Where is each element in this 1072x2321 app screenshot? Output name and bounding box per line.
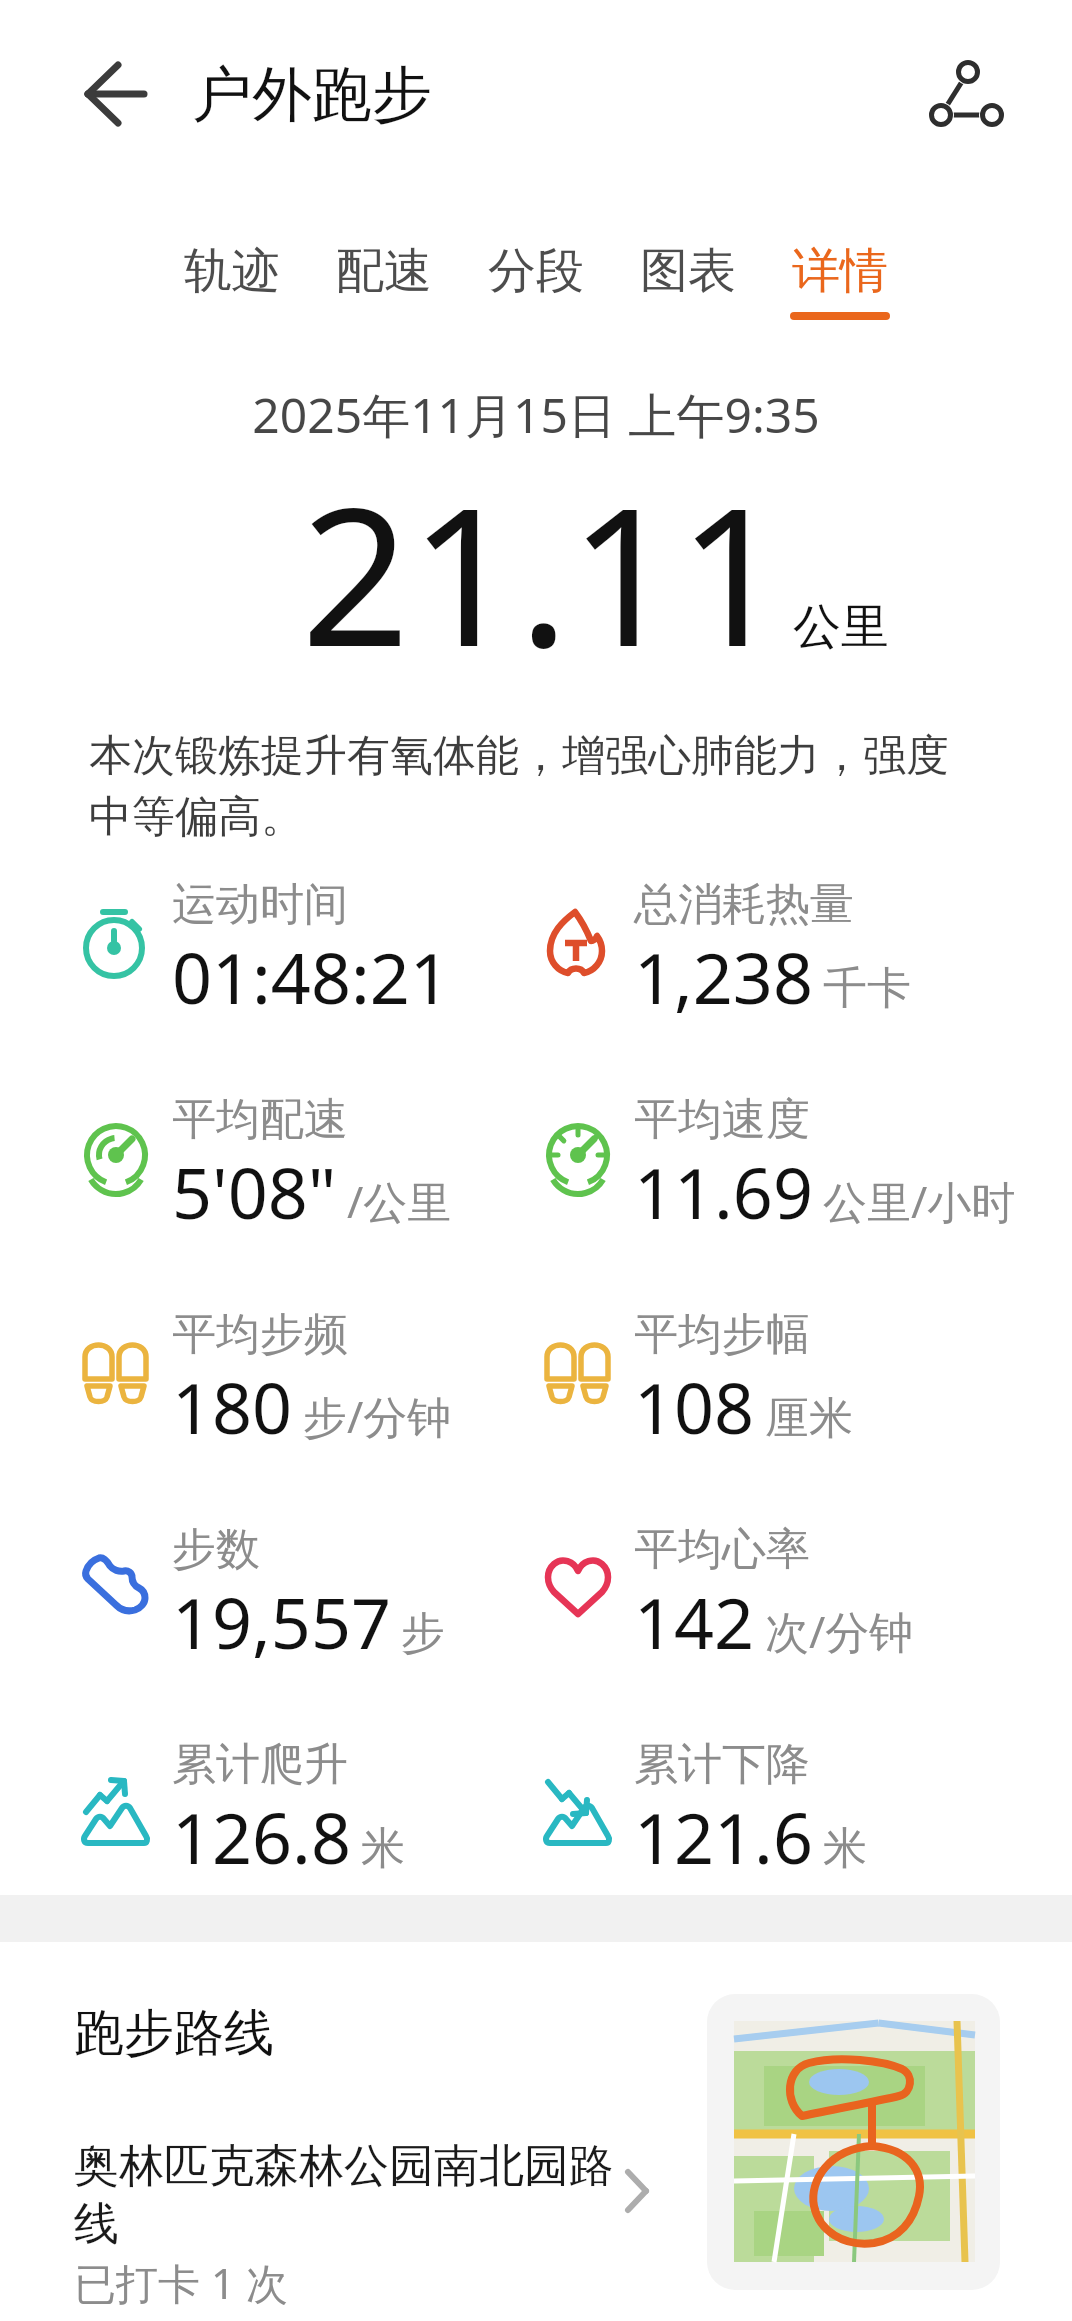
staticText: 详情 [792,241,888,301]
button[interactable]: 步数 [172,1522,445,1672]
button[interactable]: 平均心率 [634,1522,914,1672]
button[interactable] [74,55,154,131]
staticText: 01:48:21 [172,929,450,1024]
staticText: 142 [634,1574,755,1669]
button[interactable]: 平均配速 [172,1092,452,1242]
staticText: 1,238 [634,929,813,1024]
button[interactable]: 奥林匹克森林公园南北园路 线 [74,2138,614,2311]
staticText: 总消耗热量 [634,877,854,932]
staticText: 平均速度 [634,1092,810,1147]
button[interactable]: 详情 [790,241,890,320]
staticText: 轨迹 [184,241,280,301]
staticText: 运动时间 [172,877,348,932]
staticText: 步 [401,1606,445,1661]
button[interactable] [925,50,1011,136]
staticText: 公里 [793,597,889,657]
staticText: 米 [823,1821,867,1876]
staticText: 米 [361,1821,405,1876]
staticText: 图表 [640,241,736,301]
staticText: 126.8 [172,1789,351,1884]
staticText: 21.11 [301,443,787,702]
staticText: 奥林匹克森林公园南北园路 线 [74,2138,614,2252]
staticText: 180 [172,1359,293,1454]
staticText: /公里 [347,1171,452,1231]
staticText: 11.69 [634,1144,813,1239]
staticText: 121.6 [634,1789,813,1884]
staticText: 累计下降 [634,1737,810,1792]
button[interactable]: 累计下降 [634,1737,867,1887]
staticText: 19,557 [172,1574,391,1669]
staticText: 5'08" [172,1144,337,1239]
staticText: 次/分钟 [765,1601,914,1661]
button[interactable]: 平均速度 [634,1092,1016,1242]
button[interactable]: 平均步频 [172,1307,452,1457]
staticText: 108 [634,1359,755,1454]
button[interactable] [707,1994,1000,2290]
staticText: 公里/小时 [823,1171,1016,1231]
button[interactable]: 轨迹 [182,241,282,320]
button[interactable]: 运动时间 [172,877,450,1027]
button[interactable]: 总消耗热量 [634,877,911,1027]
staticText: 厘米 [765,1391,853,1446]
staticText: 户外跑步 [192,57,432,133]
staticText: 步/分钟 [303,1386,452,1446]
staticText: 步数 [172,1522,260,1577]
staticText: 累计爬升 [172,1737,348,1792]
staticText: 跑步路线 [74,2002,274,2065]
staticText: 2025年11月15日 上午9:35 [0,382,1072,448]
staticText: 千卡 [823,961,911,1016]
staticText: 平均配速 [172,1092,348,1147]
staticText: 已打卡 1 次 [74,2254,288,2311]
button[interactable]: 图表 [638,241,738,320]
staticText: 本次锻炼提升有氧体能，增强心肺能力，强度 中等偏高。 [89,729,949,844]
staticText: 平均心率 [634,1522,810,1577]
staticText: 分段 [488,241,584,301]
staticText: 平均步频 [172,1307,348,1362]
button[interactable]: 分段 [486,241,586,320]
staticText: 配速 [336,241,432,301]
button[interactable]: 配速 [334,241,434,320]
staticText: 平均步幅 [634,1307,810,1362]
button[interactable]: 累计爬升 [172,1737,405,1887]
button[interactable]: 平均步幅 [634,1307,853,1457]
